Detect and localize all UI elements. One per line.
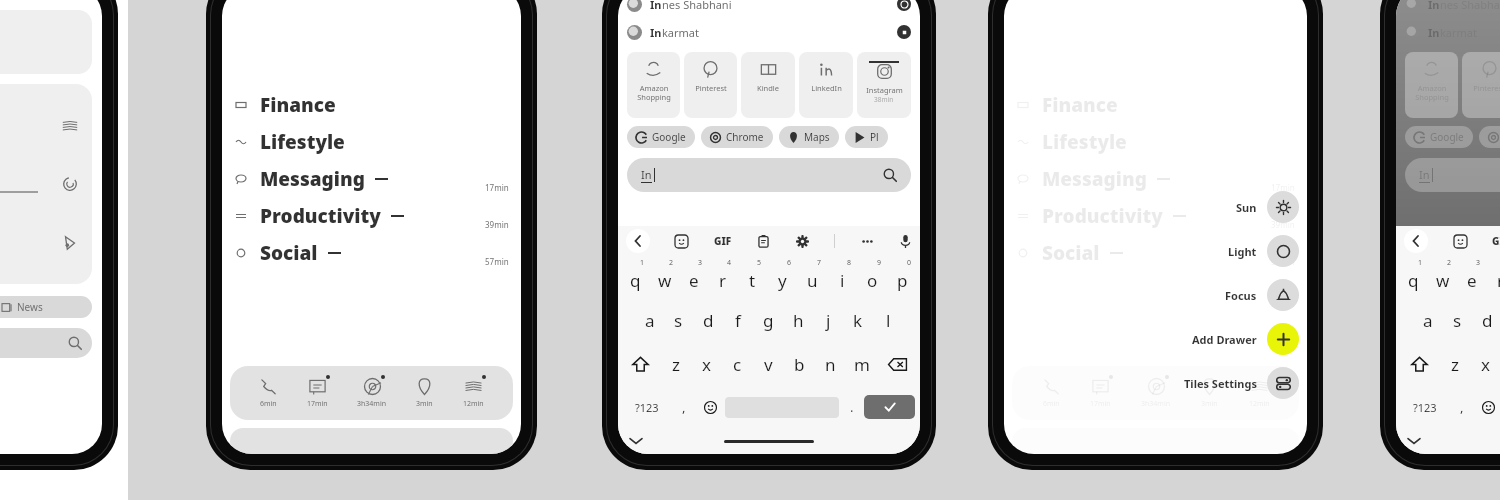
button[interactable]: l (873, 298, 903, 342)
button[interactable]: Amazon Shopping (1405, 52, 1458, 118)
button[interactable]: k (843, 298, 873, 342)
button[interactable]: 6min (259, 377, 278, 409)
button[interactable]: 4 (1486, 256, 1500, 298)
button[interactable]: , (671, 386, 696, 428)
button[interactable]: z (1439, 342, 1470, 386)
button[interactable]: a (1413, 298, 1442, 342)
button[interactable]: Timer (53, 167, 87, 201)
button[interactable]: x (691, 342, 722, 386)
button[interactable]: 17min (1090, 377, 1111, 409)
button[interactable]: In (627, 0, 911, 18)
button[interactable]: h (783, 298, 813, 342)
button[interactable]: Call (897, 0, 911, 11)
button[interactable]: Volume (53, 226, 87, 260)
button[interactable]: Productivity (1018, 197, 1295, 234)
button[interactable]: Search (0, 328, 82, 358)
button[interactable]: c (722, 342, 753, 386)
button[interactable]: Light (1228, 235, 1299, 267)
button[interactable]: Productivity (236, 197, 509, 234)
button[interactable]: In (1405, 0, 1500, 18)
button[interactable]: Social (236, 234, 509, 271)
button[interactable]: 3h34min (1141, 377, 1171, 409)
button[interactable]: . (839, 386, 864, 428)
button[interactable]: v (753, 342, 784, 386)
button[interactable]: Sticker (675, 235, 688, 248)
button[interactable]: Instagram (857, 52, 911, 118)
button[interactable]: b (784, 342, 815, 386)
button[interactable]: g (753, 298, 783, 342)
button[interactable]: 2 (650, 256, 679, 298)
button[interactable]: 5 (737, 256, 767, 298)
button[interactable]: 12min (463, 377, 484, 409)
button[interactable]: Emoji (696, 386, 725, 428)
button[interactable]: GIF (714, 234, 732, 248)
button[interactable]: Hide keyboard (1408, 435, 1420, 447)
button[interactable]: 3min (415, 377, 434, 409)
button[interactable]: 4 (708, 256, 737, 298)
button[interactable]: f (723, 298, 753, 342)
button[interactable]: 12min (1249, 377, 1270, 409)
button[interactable]: s (1442, 298, 1472, 342)
button[interactable]: Chrome (710, 126, 764, 148)
button[interactable]: Social (1018, 234, 1295, 271)
button[interactable]: x (1470, 342, 1500, 386)
button[interactable]: Google (1414, 126, 1464, 148)
button[interactable]: Google (636, 126, 686, 148)
button[interactable]: Back (626, 229, 650, 253)
button[interactable]: Pinterest (684, 52, 737, 118)
button[interactable]: Back (1404, 229, 1428, 253)
button[interactable]: , (1449, 386, 1474, 428)
button[interactable]: Emoji (1474, 386, 1500, 428)
button[interactable]: z (660, 342, 691, 386)
button[interactable] (1012, 428, 1299, 454)
button[interactable]: Voice (899, 235, 912, 248)
button[interactable]: More (861, 235, 874, 248)
button[interactable]: j (813, 298, 843, 342)
button[interactable]: 3 (679, 256, 708, 298)
button[interactable]: m (846, 342, 877, 386)
button[interactable] (230, 428, 513, 454)
button[interactable]: Pl (854, 126, 879, 148)
button[interactable]: Shift (621, 342, 660, 386)
button[interactable]: Sticker (1454, 235, 1467, 248)
button[interactable]: In (1419, 158, 1500, 192)
button[interactable]: Sleep (53, 109, 87, 143)
button[interactable]: Lifestyle (236, 123, 509, 160)
button[interactable]: Amazon Shopping (627, 52, 680, 118)
button[interactable]: Messaging (1018, 160, 1295, 197)
button[interactable]: LinkedIn (799, 52, 853, 118)
button[interactable]: Enter (864, 395, 915, 419)
button[interactable]: d (693, 298, 723, 342)
button[interactable]: ?123 (1401, 386, 1449, 428)
button[interactable]: In (1405, 18, 1500, 46)
button[interactable]: Maps (788, 126, 830, 148)
button[interactable]: 17min (307, 377, 328, 409)
button[interactable]: Settings (796, 235, 809, 248)
button[interactable]: GIF (1492, 234, 1500, 248)
button[interactable]: News (0, 296, 92, 318)
button[interactable]: 3 (1457, 256, 1486, 298)
button[interactable]: s (664, 298, 693, 342)
button[interactable]: 6min (1042, 377, 1061, 409)
button[interactable]: Chrome (1488, 126, 1500, 148)
button[interactable]: 3h34min (357, 377, 387, 409)
button[interactable]: Shift (1399, 342, 1439, 386)
button[interactable]: 8 (827, 256, 857, 298)
button[interactable]: ?123 (623, 386, 671, 428)
button[interactable]: 1 (1399, 256, 1428, 298)
button[interactable]: 6 (767, 256, 797, 298)
button[interactable]: In (627, 18, 911, 46)
button[interactable]: 7 (797, 256, 827, 298)
button[interactable]: Lifestyle (1018, 123, 1295, 160)
button[interactable]: 1 (621, 256, 650, 298)
button[interactable]: Focus (1225, 279, 1299, 311)
button[interactable]: Finance (236, 86, 509, 123)
button[interactable]: Kindle (741, 52, 795, 118)
button[interactable]: Sun (1236, 191, 1299, 223)
button[interactable]: Open (897, 25, 911, 39)
button[interactable]: Tiles Settings (1184, 367, 1299, 399)
button[interactable]: Finance (1018, 86, 1295, 123)
button[interactable]: Pinterest (1462, 52, 1500, 118)
